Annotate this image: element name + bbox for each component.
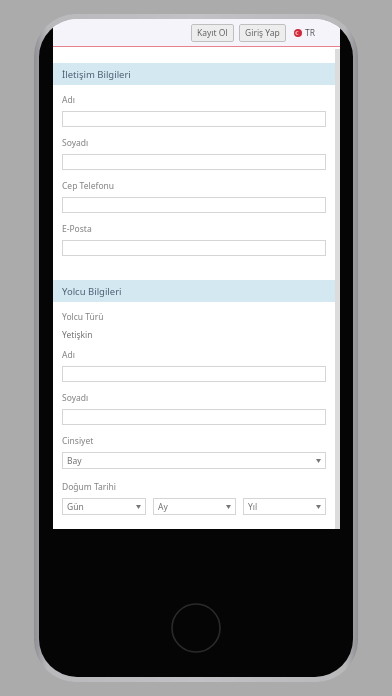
staticText: Gün [67, 501, 84, 513]
button[interactable] [62, 111, 326, 127]
button[interactable] [62, 197, 326, 213]
button[interactable] [62, 240, 326, 256]
button[interactable] [62, 409, 326, 425]
button[interactable]: Giriş Yap [239, 24, 286, 42]
button[interactable] [62, 154, 326, 170]
staticText: Bay [67, 455, 82, 467]
staticText: Ay [158, 501, 168, 513]
button[interactable] [62, 366, 326, 382]
staticText: Cep Telefonu [62, 180, 115, 192]
staticText: TR [305, 27, 316, 39]
staticText: Doğum Tarihi [62, 481, 116, 493]
button[interactable]: TR [293, 25, 317, 41]
staticText: Cinsiyet [62, 435, 94, 447]
staticText: Yolcu Türü [62, 311, 104, 323]
button[interactable]: Gün [62, 498, 146, 515]
staticText: Soyadı [62, 392, 89, 404]
staticText: E-Posta [62, 223, 92, 235]
staticText: Yolcu Bilgileri [62, 285, 122, 298]
staticText: Kayıt Ol [197, 27, 228, 39]
staticText: Yıl [248, 501, 258, 513]
button[interactable]: Kayıt Ol [191, 24, 234, 42]
staticText: İletişim Bilgileri [62, 68, 131, 81]
button[interactable]: Yıl [243, 498, 326, 515]
button[interactable]: Ay [153, 498, 236, 515]
button[interactable]: Bay [62, 452, 326, 469]
staticText: Giriş Yap [245, 27, 280, 39]
staticText: Soyadı [62, 137, 89, 149]
staticText: Yetişkin [62, 329, 93, 341]
staticText: Adı [62, 94, 75, 106]
staticText: Adı [62, 349, 75, 361]
